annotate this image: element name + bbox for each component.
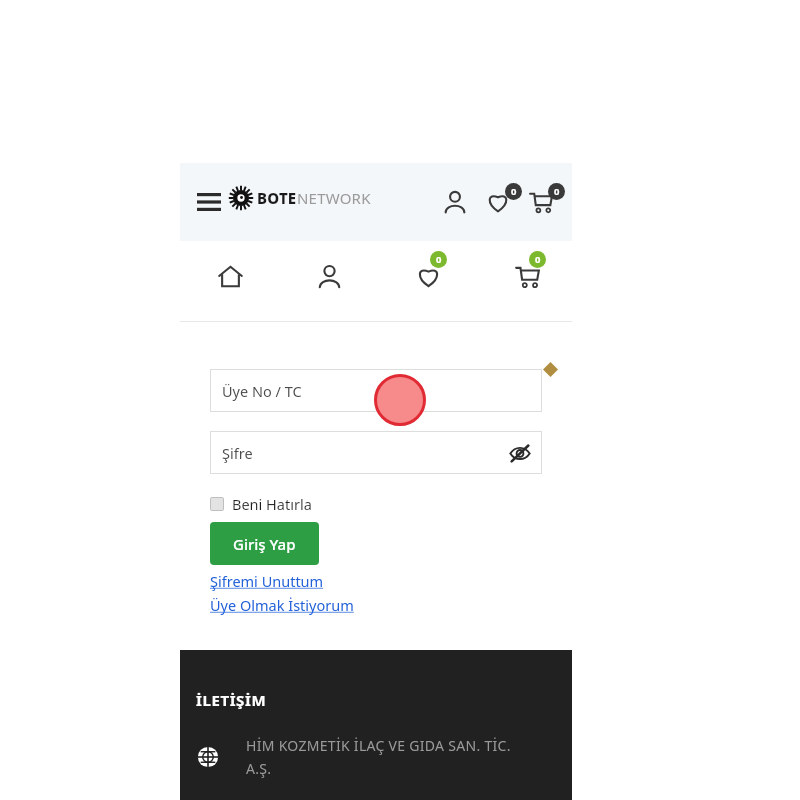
staticText: BOTE — [257, 188, 297, 208]
button[interactable]: Cart — [524, 185, 558, 219]
button[interactable]: Giriş Yap — [210, 522, 319, 565]
staticText: NETWORK — [297, 188, 371, 208]
staticText: 0 — [436, 253, 442, 266]
button[interactable]: Home — [202, 255, 258, 297]
button[interactable]: Şifre — [210, 431, 542, 474]
button[interactable]: BOTE — [228, 185, 371, 211]
staticText: HİM KOZMETİK İLAÇ VE GIDA SAN. TİC. — [246, 736, 511, 755]
button[interactable]: Üye No / TC — [210, 369, 542, 412]
staticText: Şifremi Unuttum — [210, 571, 324, 591]
staticText: 0 — [554, 185, 560, 198]
staticText: 0 — [535, 253, 541, 266]
button[interactable]: Cart — [499, 255, 555, 297]
staticText: Üye Olmak İstiyorum — [210, 595, 354, 615]
staticText: A.Ş. — [246, 759, 272, 778]
staticText: Giriş Yap — [233, 534, 296, 554]
button[interactable]: Favorites — [400, 255, 456, 297]
staticText: 0 — [511, 185, 517, 198]
staticText: İLETİŞİM — [196, 690, 267, 710]
button[interactable]: Beni Hatırla — [210, 492, 312, 516]
button[interactable]: Üye Olmak İstiyorum — [210, 595, 354, 615]
staticText: Beni Hatırla — [232, 494, 312, 514]
button[interactable]: Favorites — [481, 185, 515, 219]
button[interactable]: Menu — [194, 187, 224, 217]
staticText: Üye No / TC — [222, 381, 302, 401]
staticText: Şifre — [222, 443, 253, 463]
button[interactable]: Show password — [506, 439, 534, 467]
button[interactable]: Profile — [301, 255, 357, 297]
button[interactable]: Şifremi Unuttum — [210, 571, 324, 591]
button[interactable]: Account — [438, 185, 472, 219]
